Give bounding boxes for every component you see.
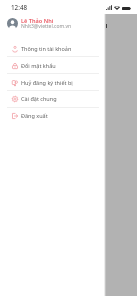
button[interactable]: Cài đặt chung: [0, 90, 105, 107]
staticText: 12:48: [11, 3, 28, 12]
staticText: Đổi mật khẩu: [21, 62, 56, 69]
staticText: Cài đặt chung: [21, 95, 57, 102]
staticText: Huỷ đăng ký thiết bị: [21, 79, 73, 86]
staticText: Đăng xuất: [21, 112, 48, 119]
button[interactable]: Đổi mật khẩu: [0, 57, 105, 74]
staticText: Thông tin tài khoản: [21, 45, 72, 52]
staticText: Nhlt3@viettel.com.vn: [21, 23, 72, 30]
staticText: Lê Thảo Nhi: [21, 17, 54, 25]
button[interactable]: Thông tin tài khoản: [0, 40, 105, 57]
button[interactable]: Huỷ đăng ký thiết bị: [0, 74, 105, 91]
button[interactable]: Đăng xuất: [0, 107, 105, 124]
button[interactable]: Lê Thảo Nhi: [0, 16, 105, 33]
